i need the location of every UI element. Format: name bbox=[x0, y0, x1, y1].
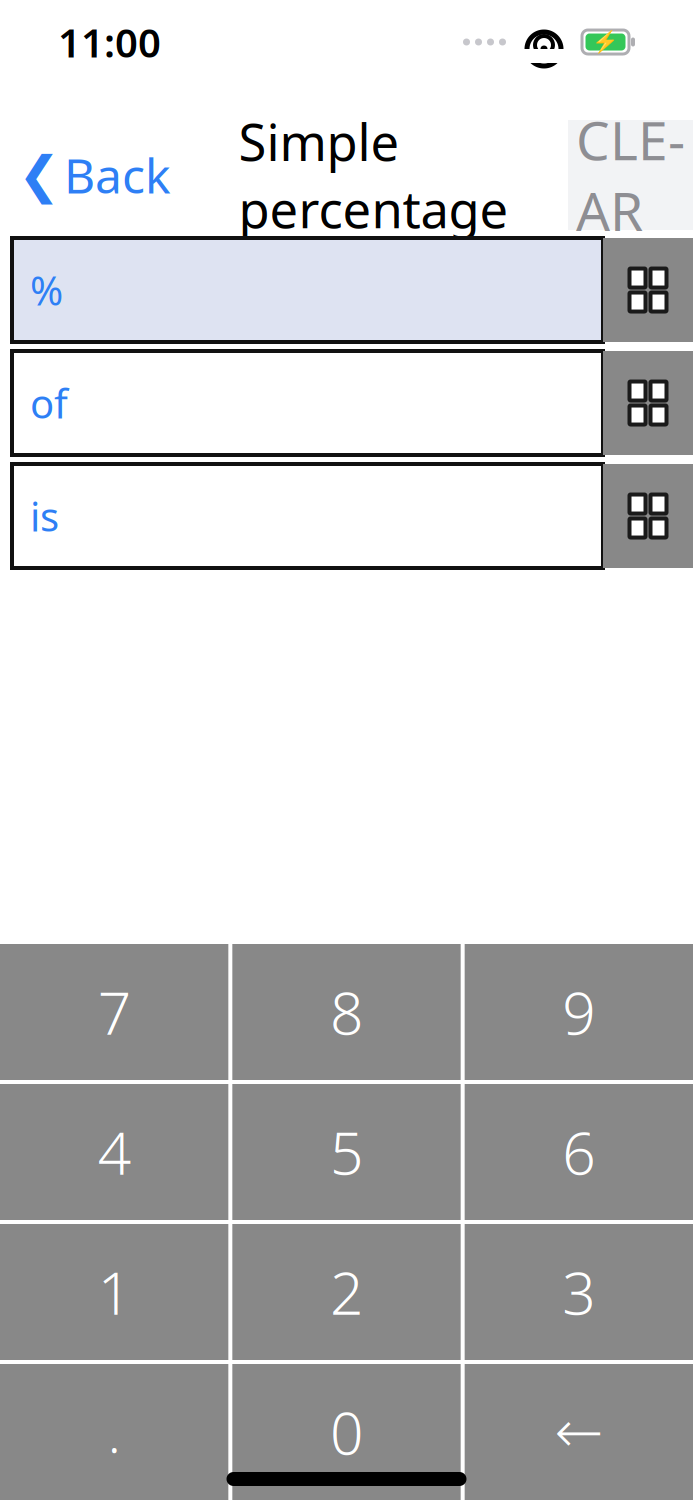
staticText: 9 bbox=[562, 973, 595, 1051]
staticText: 8 bbox=[330, 973, 363, 1051]
staticText: of bbox=[30, 376, 68, 429]
button[interactable]: 1 bbox=[0, 1224, 228, 1360]
button[interactable]: . bbox=[0, 1364, 228, 1500]
button[interactable]: Keypad for is bbox=[603, 464, 693, 568]
staticText: 2 bbox=[330, 1253, 363, 1331]
staticText: ⚡ bbox=[592, 30, 619, 54]
button[interactable]: is bbox=[12, 464, 603, 568]
staticText: ← bbox=[554, 1399, 603, 1465]
staticText: 3 bbox=[562, 1253, 595, 1331]
staticText: % bbox=[30, 263, 63, 316]
button[interactable]: 3 bbox=[465, 1224, 693, 1360]
button[interactable]: 5 bbox=[232, 1084, 461, 1220]
button[interactable]: of bbox=[12, 351, 603, 455]
button[interactable]: 4 bbox=[0, 1084, 228, 1220]
staticText: . bbox=[108, 1397, 121, 1467]
staticText: Simple percentage bbox=[238, 108, 508, 242]
button[interactable]: % bbox=[12, 238, 603, 342]
staticText: is bbox=[30, 489, 59, 542]
button[interactable]: 9 bbox=[465, 944, 693, 1080]
button[interactable]: 6 bbox=[465, 1084, 693, 1220]
button[interactable]: 0 bbox=[232, 1364, 461, 1500]
button[interactable]: 7 bbox=[0, 944, 228, 1080]
staticText: 6 bbox=[562, 1113, 595, 1191]
staticText: 0 bbox=[330, 1393, 363, 1471]
staticText: 1 bbox=[98, 1253, 131, 1331]
staticText: 11:00 bbox=[58, 15, 161, 68]
button[interactable]: 2 bbox=[232, 1224, 461, 1360]
staticText: ❮ bbox=[18, 146, 60, 204]
button[interactable]: CLEAR bbox=[568, 120, 693, 230]
button[interactable]: ❮ bbox=[0, 120, 179, 230]
staticText: 7 bbox=[98, 973, 131, 1051]
button[interactable]: Keypad for % bbox=[603, 238, 693, 342]
staticText: Back bbox=[64, 143, 171, 207]
staticText: 4 bbox=[98, 1113, 131, 1191]
button[interactable]: ← bbox=[465, 1364, 693, 1500]
button[interactable]: 8 bbox=[232, 944, 461, 1080]
staticText: CLEAR bbox=[576, 104, 685, 246]
button[interactable]: Keypad for of bbox=[603, 351, 693, 455]
staticText: 5 bbox=[330, 1113, 363, 1191]
